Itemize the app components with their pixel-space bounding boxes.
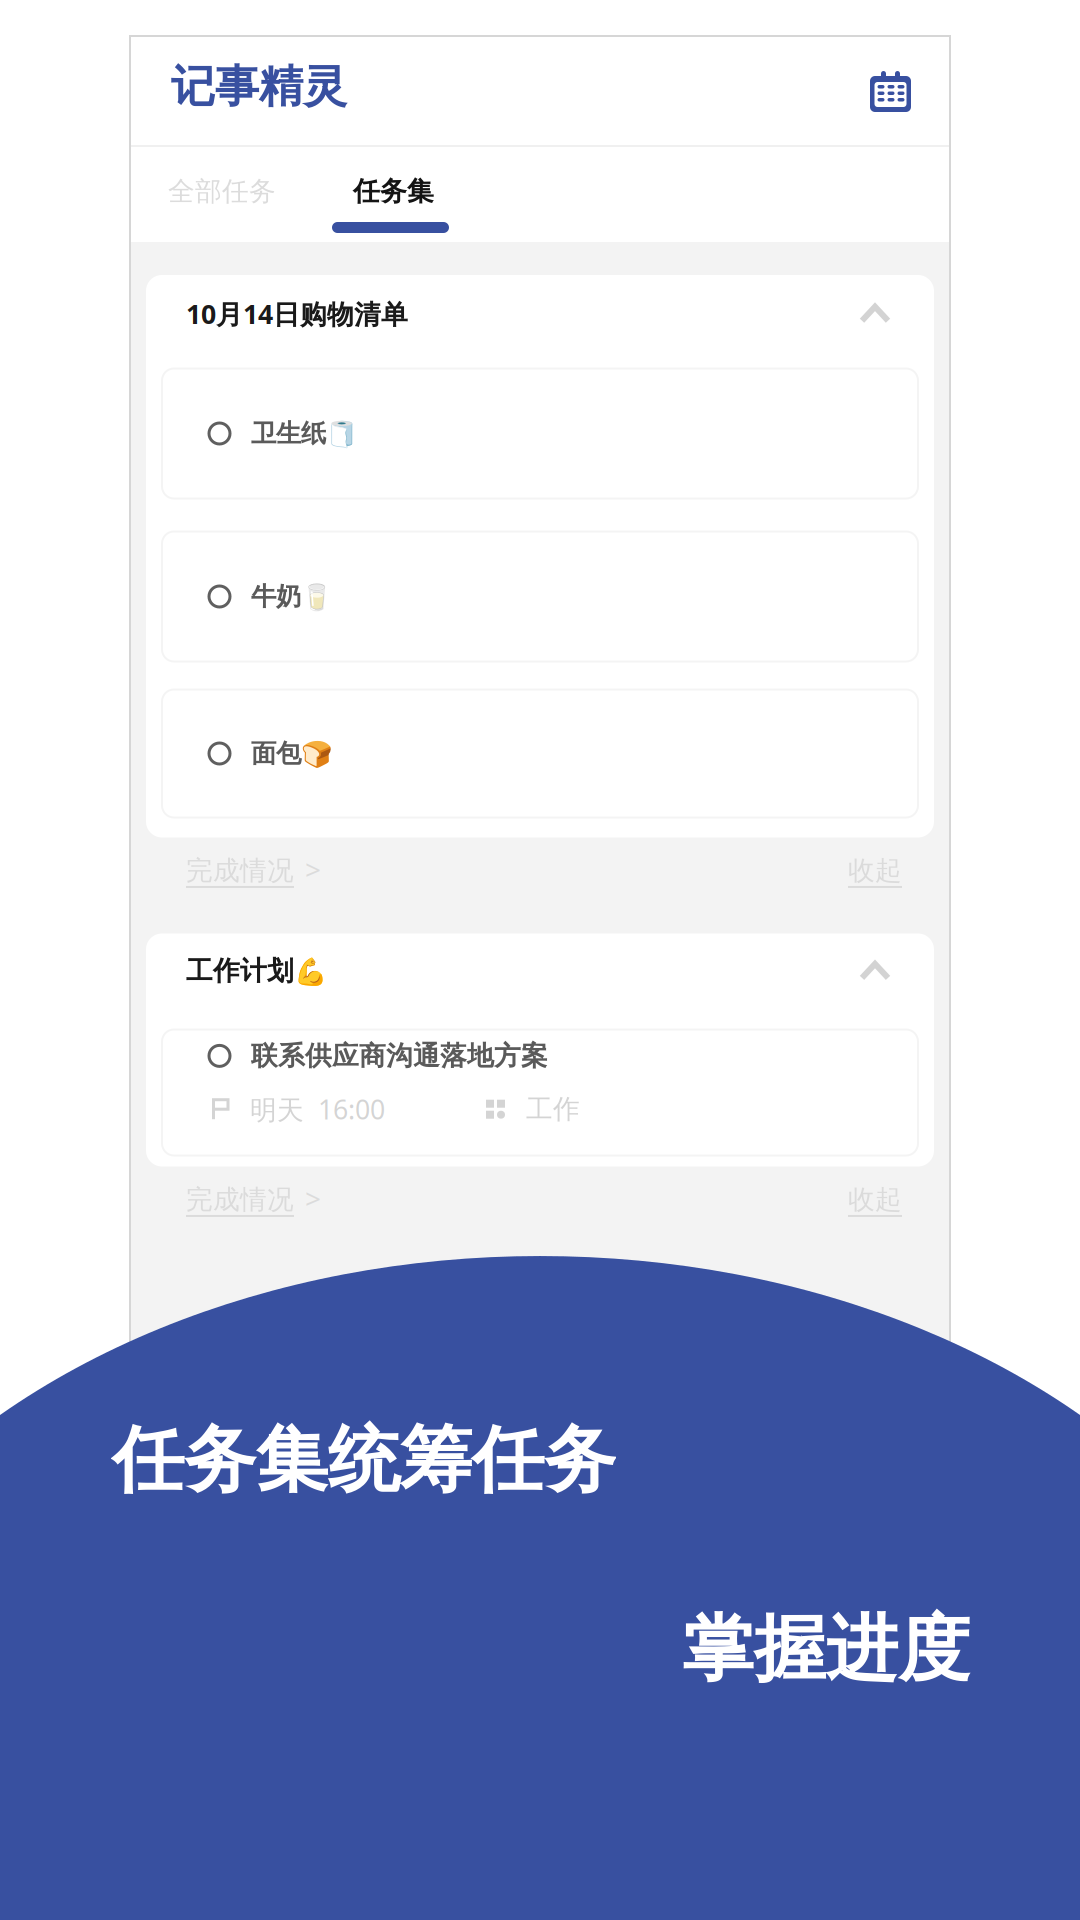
button[interactable]: 完成情况 bbox=[186, 852, 321, 890]
staticText: 面包🍞 bbox=[251, 738, 333, 769]
button[interactable]: 任务集 bbox=[332, 147, 449, 242]
staticText: 明天 16:00 bbox=[250, 1091, 385, 1127]
staticText: 掌握进度 bbox=[682, 1605, 970, 1693]
staticText: 完成情况 bbox=[186, 1183, 294, 1216]
staticText: 任务集统筹任务 bbox=[112, 1416, 616, 1504]
staticText: 任务集 bbox=[353, 175, 434, 208]
button[interactable]: 完成情况 bbox=[186, 1181, 321, 1219]
button[interactable]: Calendar bbox=[870, 71, 911, 112]
staticText: 工作计划💪 bbox=[186, 954, 327, 987]
button[interactable]: 联系供应商沟通落地方案 bbox=[162, 1029, 918, 1155]
button[interactable]: 收起 bbox=[848, 854, 902, 888]
staticText: 全部任务 bbox=[168, 175, 276, 208]
button[interactable]: 10月14日购物清单 bbox=[146, 296, 934, 368]
staticText: > bbox=[305, 1179, 321, 1217]
staticText: 牛奶🥛 bbox=[251, 581, 333, 612]
staticText: 工作 bbox=[526, 1093, 580, 1126]
button[interactable]: 全部任务 bbox=[171, 147, 273, 242]
button[interactable]: 牛奶🥛 bbox=[162, 531, 918, 661]
staticText: 卫生纸🧻 bbox=[251, 418, 358, 449]
button[interactable]: 工作计划💪 bbox=[146, 954, 934, 1026]
staticText: 收起 bbox=[848, 854, 902, 887]
staticText: 完成情况 bbox=[186, 854, 294, 887]
staticText: > bbox=[305, 850, 321, 888]
button[interactable]: 面包🍞 bbox=[162, 689, 918, 817]
staticText: 收起 bbox=[848, 1183, 902, 1216]
button[interactable]: 收起 bbox=[848, 1183, 902, 1217]
staticText: 记事精灵 bbox=[171, 59, 347, 113]
staticText: 联系供应商沟通落地方案 bbox=[251, 1039, 548, 1072]
button[interactable]: 卫生纸🧻 bbox=[162, 368, 918, 498]
staticText: 10月14日购物清单 bbox=[186, 296, 408, 331]
